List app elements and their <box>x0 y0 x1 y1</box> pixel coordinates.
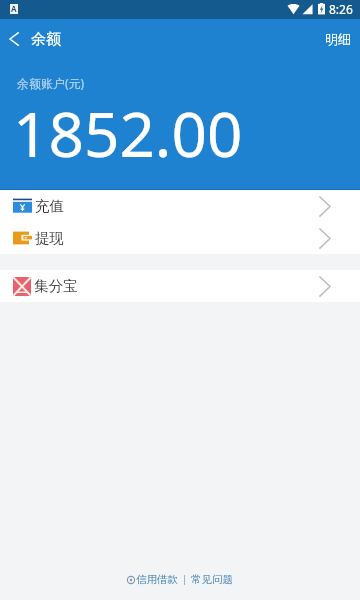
staticText: 信用借款 <box>136 573 178 586</box>
staticText: 1852.00 <box>13 91 243 175</box>
staticText: 余额账户(元) <box>17 75 85 91</box>
button[interactable]: 集分宝 <box>0 270 360 302</box>
staticText: 集分宝 <box>34 277 78 295</box>
button[interactable]: 常见问题 <box>191 569 233 590</box>
button[interactable]: 返回 <box>0 19 31 59</box>
staticText: 8:26 <box>329 1 353 17</box>
staticText: 余额 <box>31 30 61 49</box>
button[interactable]: 信用借款 <box>127 569 178 590</box>
staticText: 明细 <box>325 31 351 47</box>
staticText: 充值 <box>35 197 64 215</box>
button[interactable]: 提现 <box>0 222 360 254</box>
staticText: 常见问题 <box>191 573 233 586</box>
button[interactable]: 充值 <box>0 190 360 222</box>
button[interactable]: 明细 <box>316 19 360 59</box>
staticText: A <box>11 3 17 13</box>
staticText: 提现 <box>35 229 64 247</box>
